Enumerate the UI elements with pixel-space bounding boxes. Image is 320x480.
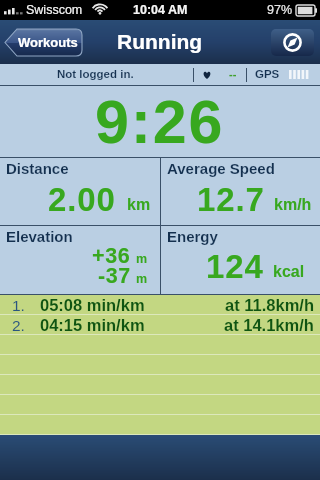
staticText: Running — [117, 30, 203, 53]
staticText: Workouts — [18, 35, 78, 50]
button[interactable] — [0, 355, 320, 375]
staticText: Not logged in. — [57, 68, 134, 81]
staticText: m — [136, 272, 148, 286]
staticText: GPS — [255, 68, 280, 81]
button[interactable] — [0, 375, 320, 395]
staticText: Energy — [167, 228, 218, 245]
button[interactable]: Workouts — [5, 29, 82, 56]
button[interactable] — [0, 395, 320, 415]
staticText: Elevation — [6, 228, 73, 245]
staticText: 124 — [206, 248, 264, 285]
button[interactable]: 1. — [0, 295, 320, 315]
staticText: m — [136, 252, 148, 266]
staticText: 10:04 AM — [133, 3, 188, 17]
staticText: 04:15 min/km — [40, 316, 145, 334]
staticText: km/h — [274, 196, 312, 214]
staticText: Average Speed — [167, 160, 275, 177]
staticText: 9:26 — [95, 88, 225, 156]
staticText: 1. — [12, 297, 25, 314]
button[interactable] — [0, 415, 320, 435]
button[interactable]: Map — [271, 29, 314, 56]
staticText: +36 — [92, 244, 131, 268]
button[interactable]: 2. — [0, 315, 320, 335]
staticText: kcal — [273, 263, 305, 281]
staticText: 97% — [267, 3, 293, 17]
staticText: Swisscom — [26, 3, 83, 17]
staticText: at 14.1km/h — [224, 316, 314, 334]
staticText: 05:08 min/km — [40, 296, 145, 314]
staticText: -- — [229, 68, 237, 80]
staticText: Distance — [6, 160, 69, 177]
staticText: 12.7 — [197, 181, 265, 218]
staticText: -37 — [98, 264, 131, 288]
staticText: 2. — [12, 317, 25, 334]
staticText: 2.00 — [48, 181, 116, 218]
button[interactable] — [0, 335, 320, 355]
staticText: at 11.8km/h — [225, 296, 314, 314]
staticText: km — [127, 196, 151, 214]
